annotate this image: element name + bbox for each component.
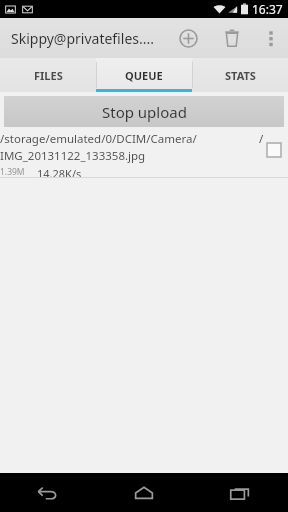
button[interactable]: Delete [210,18,254,58]
staticText: /storage/emulated/0/DCIM/Camera/ [0,131,197,147]
staticText: Stop upload [102,102,187,122]
button[interactable]: Select file [267,143,281,157]
button[interactable]: Recent apps [192,473,288,512]
staticText: FILES [34,68,63,83]
button[interactable]: Back [0,473,96,512]
button[interactable]: QUEUE [96,58,192,92]
button[interactable]: More options [254,18,288,58]
staticText: Skippy@privatefiles.... [11,29,155,48]
staticText: 16:37 [252,1,283,17]
staticText: / [259,131,264,147]
staticText: STATS [225,68,256,83]
staticText: IMG_20131122_133358.jpg [0,148,146,164]
button[interactable]: Stop upload [4,96,284,127]
button[interactable]: /storage/emulated/0/DCIM/Camera/ [0,130,288,178]
button[interactable]: STATS [192,58,288,92]
button[interactable]: FILES [0,58,96,92]
staticText: 1.39M [0,166,25,178]
staticText: QUEUE [125,68,163,83]
button[interactable]: Home [96,473,192,512]
button[interactable]: Add [166,18,210,58]
staticText: 14.28K/s [37,166,82,178]
button[interactable]: Skippy@privatefiles.... [0,18,163,58]
